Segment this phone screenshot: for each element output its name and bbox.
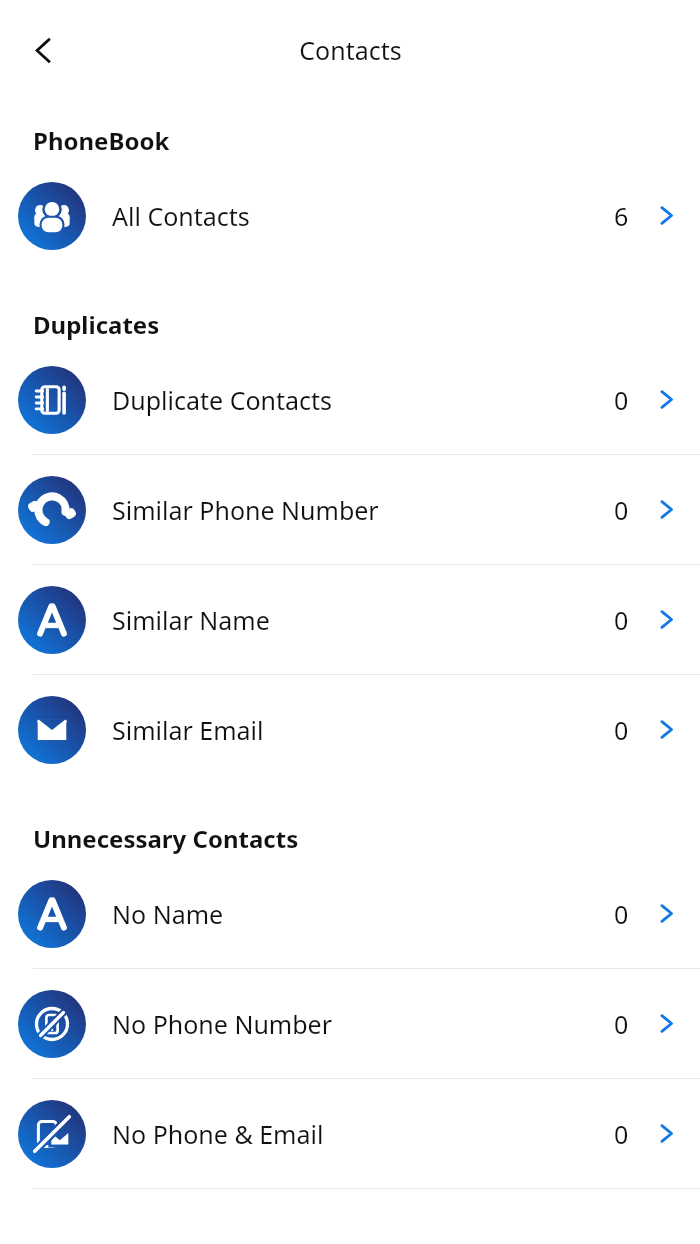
staticText: Duplicates <box>33 308 700 341</box>
button[interactable]: All Contacts <box>0 161 700 270</box>
staticText: Contacts <box>299 33 402 67</box>
staticText: Duplicate Contacts <box>112 383 614 417</box>
staticText: Similar Phone Number <box>112 493 614 527</box>
staticText: PhoneBook <box>33 124 700 157</box>
staticText: No Name <box>112 897 614 931</box>
staticText: Similar Email <box>112 713 614 747</box>
button[interactable]: Similar Phone Number <box>0 455 700 564</box>
staticText: No Phone Number <box>112 1007 614 1041</box>
button[interactable]: Back <box>16 23 70 77</box>
staticText: 0 <box>614 603 629 637</box>
button[interactable]: No Phone Number <box>0 969 700 1078</box>
staticText: Similar Name <box>112 603 614 637</box>
staticText: 0 <box>614 1117 629 1151</box>
staticText: 0 <box>614 713 629 747</box>
staticText: All Contacts <box>112 199 614 233</box>
staticText: 6 <box>614 199 629 233</box>
button[interactable]: Similar Name <box>0 565 700 674</box>
staticText: No Phone & Email <box>112 1117 614 1151</box>
button[interactable]: Duplicate Contacts <box>0 345 700 454</box>
staticText: Unnecessary Contacts <box>33 822 700 855</box>
button[interactable]: No Phone & Email <box>0 1079 700 1188</box>
staticText: 0 <box>614 383 629 417</box>
button[interactable]: No Name <box>0 859 700 968</box>
button[interactable]: Similar Email <box>0 675 700 784</box>
staticText: 0 <box>614 493 629 527</box>
staticText: 0 <box>614 897 629 931</box>
staticText: 0 <box>614 1007 629 1041</box>
